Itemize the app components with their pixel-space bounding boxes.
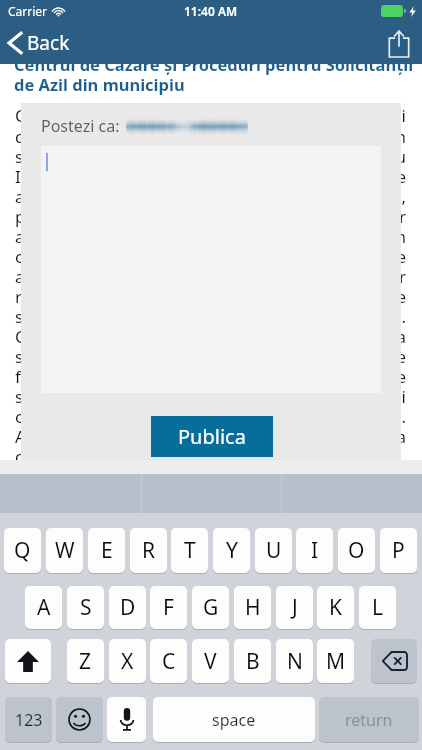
other: Shift — [17, 651, 39, 672]
button[interactable]: L — [359, 586, 396, 629]
staticText: D — [120, 593, 136, 622]
button[interactable]: Backspace — [371, 639, 417, 683]
staticText: O — [348, 536, 365, 565]
button[interactable]: F — [150, 586, 187, 629]
staticText: Publica — [178, 423, 246, 450]
button[interactable]: S — [67, 586, 104, 629]
staticText: G — [203, 593, 219, 622]
staticText: 11:40 AM — [184, 3, 238, 19]
staticText: Back — [27, 30, 70, 56]
staticText: C — [162, 647, 176, 676]
staticText: return — [345, 709, 393, 731]
button[interactable]: O — [338, 528, 375, 573]
staticText: X — [121, 647, 134, 676]
button[interactable]: Back — [0, 26, 82, 60]
button[interactable]: Y — [213, 528, 250, 573]
staticText: Carrier — [8, 3, 48, 19]
button[interactable]: B — [234, 639, 271, 683]
staticText: W — [55, 536, 75, 565]
button[interactable]: Share — [388, 30, 422, 57]
button[interactable]: X — [109, 639, 146, 683]
other: Dictation — [119, 708, 135, 731]
button[interactable]: D — [109, 586, 146, 629]
staticText: T — [184, 536, 196, 565]
button[interactable]: Publica — [151, 416, 273, 457]
staticText: H — [245, 593, 261, 622]
button[interactable]: J — [276, 586, 313, 629]
staticText: Centrul de Cazare și Proceduri pentru So… — [14, 53, 422, 96]
other: Backspace — [382, 652, 407, 670]
staticText: M — [326, 647, 346, 676]
button[interactable]: E — [88, 528, 125, 573]
button[interactable]: M — [317, 639, 354, 683]
staticText: Q — [14, 536, 31, 565]
button[interactable]: K — [317, 586, 354, 629]
staticText: B — [246, 647, 260, 676]
button[interactable]: space — [153, 697, 315, 742]
staticText: Y — [226, 536, 238, 565]
staticText: E — [101, 536, 113, 565]
button[interactable]: R — [130, 528, 167, 573]
button[interactable]: C — [150, 639, 187, 683]
button[interactable]: P — [380, 528, 417, 573]
button[interactable]: V — [192, 639, 229, 683]
staticText: Z — [79, 647, 92, 676]
button[interactable]: Emoji — [56, 697, 103, 742]
staticText: N — [287, 647, 303, 676]
staticText: I — [311, 536, 319, 565]
button[interactable]: H — [234, 586, 271, 629]
button[interactable]: 123 — [5, 697, 52, 742]
staticText: A — [37, 593, 51, 622]
button[interactable]: A — [25, 586, 62, 629]
button[interactable]: U — [255, 528, 292, 573]
button[interactable]: G — [192, 586, 229, 629]
staticText: U — [266, 536, 282, 565]
button[interactable]: return — [319, 697, 419, 742]
staticText: Centrul de Cazare și Proceduri pentru So… — [15, 104, 406, 728]
staticText: K — [329, 593, 342, 622]
button[interactable]: I — [296, 528, 333, 573]
staticText: J — [292, 593, 298, 622]
staticText: space — [212, 709, 256, 731]
button[interactable]: Q — [4, 528, 41, 573]
staticText: R — [142, 536, 156, 565]
button[interactable]: Shift — [5, 639, 51, 683]
button[interactable]: Z — [67, 639, 104, 683]
button[interactable]: W — [46, 528, 83, 573]
staticText: Postezi ca: — [41, 115, 120, 137]
staticText: P — [392, 536, 405, 565]
other: Emoji — [68, 708, 91, 731]
staticText: 123 — [15, 709, 43, 731]
staticText: F — [163, 593, 174, 622]
button[interactable]: Dictation — [107, 697, 146, 742]
button[interactable]: T — [171, 528, 208, 573]
staticText: L — [372, 593, 384, 622]
staticText: S — [80, 593, 92, 622]
staticText: V — [204, 647, 217, 676]
button[interactable]: N — [276, 639, 313, 683]
